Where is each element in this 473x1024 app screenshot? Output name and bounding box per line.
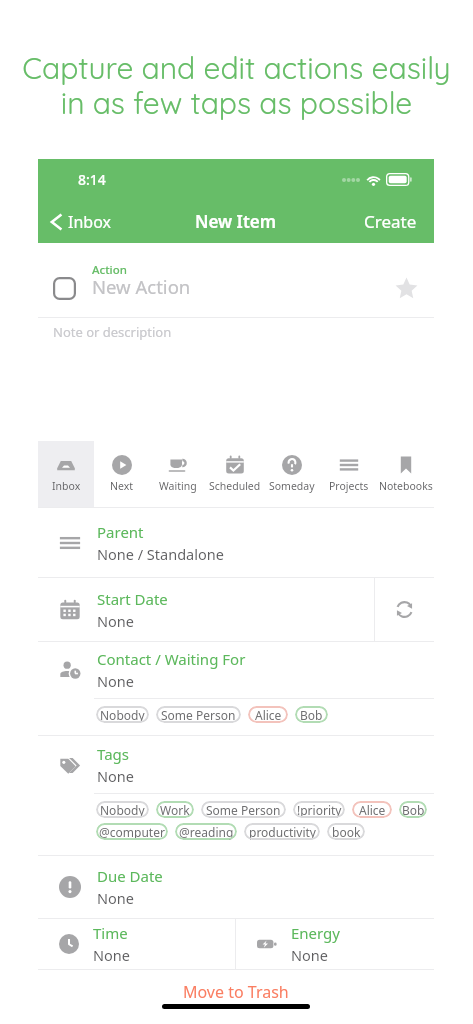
button[interactable]: Bob (399, 801, 427, 818)
staticText: Work (160, 802, 190, 818)
staticText: Start Date (97, 589, 168, 609)
staticText: Capture and edit actions easily in as fe… (0, 49, 473, 121)
staticText: Some Person (161, 707, 236, 723)
staticText: Energy (291, 923, 340, 943)
staticText: Some Person (206, 802, 281, 818)
button[interactable]: Some Person (201, 801, 286, 818)
button[interactable]: Start Date (38, 578, 374, 641)
staticText: Bob (300, 707, 323, 723)
staticText: None (97, 888, 134, 908)
button[interactable]: Action (38, 243, 434, 317)
staticText: Due Date (97, 866, 163, 886)
button[interactable]: Parent (38, 508, 434, 577)
button[interactable]: Repeat (375, 578, 434, 641)
button[interactable]: Next (94, 441, 150, 507)
staticText: @computer (99, 824, 165, 840)
staticText: 8:14 (78, 170, 106, 189)
button[interactable]: Energy (236, 919, 434, 969)
button[interactable]: Nobody (96, 706, 149, 723)
staticText: Waiting (159, 479, 197, 493)
button[interactable]: Work (156, 801, 194, 818)
staticText: Notebooks (379, 479, 433, 493)
staticText: Inbox (68, 211, 111, 233)
staticText: Bob (402, 802, 425, 818)
staticText: Note or description (53, 323, 172, 341)
button[interactable]: Tags (38, 736, 434, 855)
staticText: None (93, 945, 130, 965)
button[interactable]: Someday (263, 441, 320, 507)
button[interactable]: Bob (295, 706, 328, 723)
staticText: Contact / Waiting For (97, 649, 246, 669)
button[interactable]: @reading (175, 823, 237, 840)
staticText: Projects (329, 479, 369, 493)
button[interactable]: Due Date (38, 856, 434, 918)
button[interactable]: productivity (244, 823, 320, 840)
staticText: Move to Trash (183, 981, 289, 1003)
staticText: None (97, 671, 134, 691)
button[interactable]: Create (347, 200, 434, 243)
staticText: Alice (359, 802, 386, 818)
button[interactable]: Projects (320, 441, 377, 507)
staticText: Create (364, 210, 417, 233)
button[interactable]: !priority (293, 801, 345, 818)
button[interactable]: @computer (96, 823, 168, 840)
staticText: Time (93, 923, 128, 943)
staticText: Inbox (52, 479, 81, 493)
staticText: None / Standalone (97, 544, 224, 564)
staticText: book (332, 824, 361, 840)
button[interactable]: Nobody (96, 801, 149, 818)
staticText: Scheduled (209, 479, 261, 493)
button[interactable]: Star (395, 277, 418, 300)
staticText: None (97, 611, 134, 631)
button[interactable]: book (327, 823, 365, 840)
button[interactable]: Notebooks (377, 441, 434, 507)
button[interactable]: Move to Trash (38, 970, 434, 1014)
staticText: Next (110, 479, 134, 493)
staticText: @reading (179, 824, 234, 840)
button[interactable]: Some Person (156, 706, 241, 723)
staticText: productivity (249, 824, 316, 840)
button[interactable]: Alice (352, 801, 392, 818)
staticText: New Action (92, 274, 191, 299)
button[interactable]: Waiting (150, 441, 206, 507)
button[interactable]: Scheduled (206, 441, 263, 507)
staticText: Tags (97, 744, 129, 764)
staticText: Someday (269, 479, 315, 493)
staticText: Alice (255, 707, 282, 723)
button[interactable]: Inbox (38, 200, 121, 243)
staticText: New Item (195, 210, 277, 233)
button[interactable]: Inbox (38, 441, 94, 507)
staticText: Action (92, 262, 127, 278)
staticText: Nobody (100, 707, 145, 723)
button[interactable]: Note or description (38, 318, 434, 441)
staticText: Parent (97, 522, 144, 542)
staticText: None (291, 945, 328, 965)
staticText: Nobody (100, 802, 145, 818)
button[interactable]: Contact / Waiting For (38, 642, 434, 735)
staticText: None (97, 766, 134, 786)
staticText: !priority (297, 802, 342, 818)
button[interactable]: Alice (248, 706, 288, 723)
button[interactable]: Time (38, 919, 235, 969)
